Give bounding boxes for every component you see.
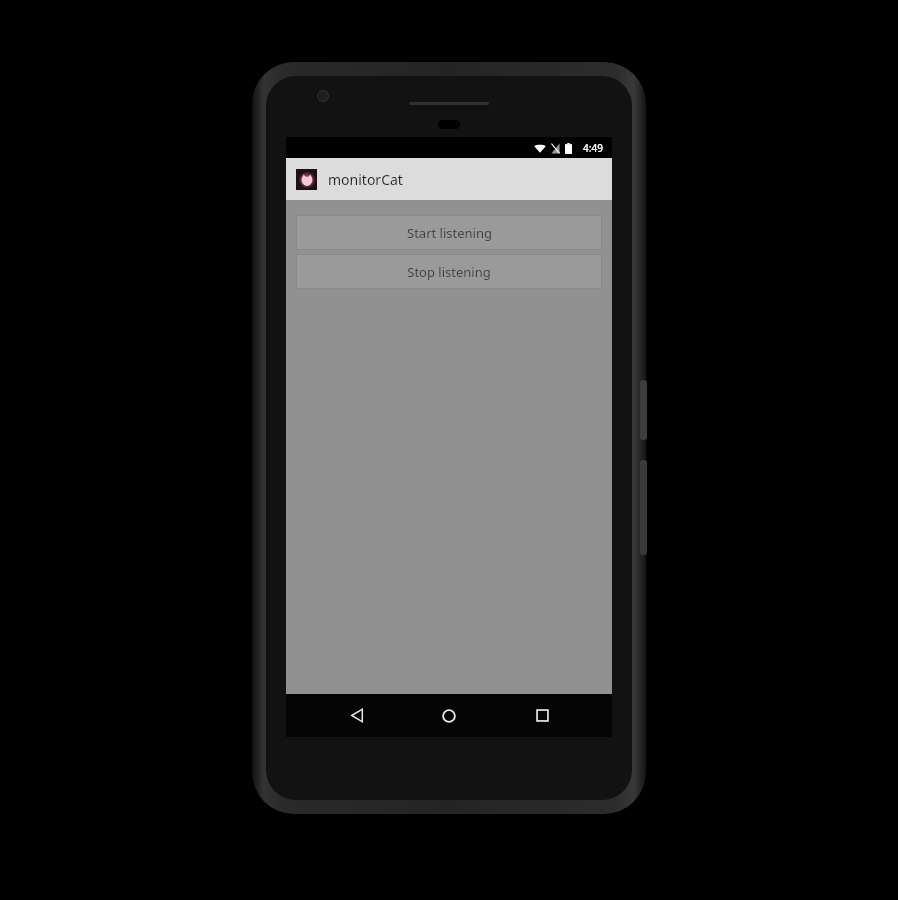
staticText: Start listening bbox=[407, 224, 492, 242]
staticText: 4:49 bbox=[583, 141, 603, 155]
staticText: Stop listening bbox=[407, 263, 491, 281]
button[interactable]: Back bbox=[335, 694, 379, 737]
button[interactable]: Home bbox=[427, 694, 471, 737]
button[interactable]: Recent apps bbox=[520, 694, 564, 737]
staticText: monitorCat bbox=[328, 170, 403, 189]
button[interactable]: Stop listening bbox=[296, 254, 602, 289]
button[interactable]: Start listening bbox=[296, 215, 602, 250]
